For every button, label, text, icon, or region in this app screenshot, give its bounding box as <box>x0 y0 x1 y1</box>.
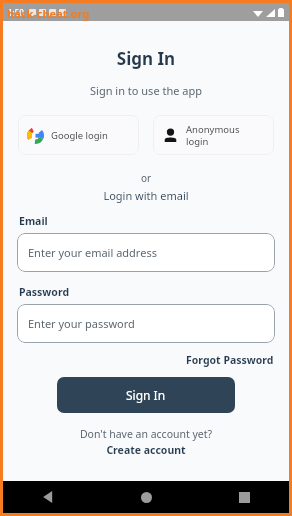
staticText: or <box>3 171 289 185</box>
button[interactable]: Sign In <box>57 377 235 413</box>
button[interactable]: Google login <box>18 115 139 155</box>
staticText: Anonymous login <box>186 123 240 147</box>
button[interactable]: Home <box>131 482 161 512</box>
button[interactable]: Create account <box>3 443 289 457</box>
staticText: Enter your email address <box>28 245 157 260</box>
button[interactable]: Back <box>33 482 63 512</box>
staticText: Password <box>19 285 289 299</box>
staticText: Sign In <box>3 47 289 70</box>
staticText: 1:50 <box>8 7 24 18</box>
staticText: Google login <box>51 129 108 142</box>
button[interactable]: Enter your password <box>17 304 275 343</box>
button[interactable]: Recents <box>229 482 259 512</box>
staticText: Email <box>19 214 289 228</box>
staticText: hack-cheat.org <box>7 6 90 21</box>
staticText: Sign in to use the app <box>3 83 289 98</box>
button[interactable]: Enter your email address <box>17 233 275 272</box>
button[interactable]: Forgot Password <box>184 351 276 369</box>
staticText: Login with email <box>3 188 289 203</box>
staticText: Don't have an account yet? <box>3 427 289 441</box>
staticText: Enter your password <box>28 316 135 331</box>
staticText: Sign In <box>126 387 166 403</box>
button[interactable]: Anonymous login <box>153 115 274 155</box>
